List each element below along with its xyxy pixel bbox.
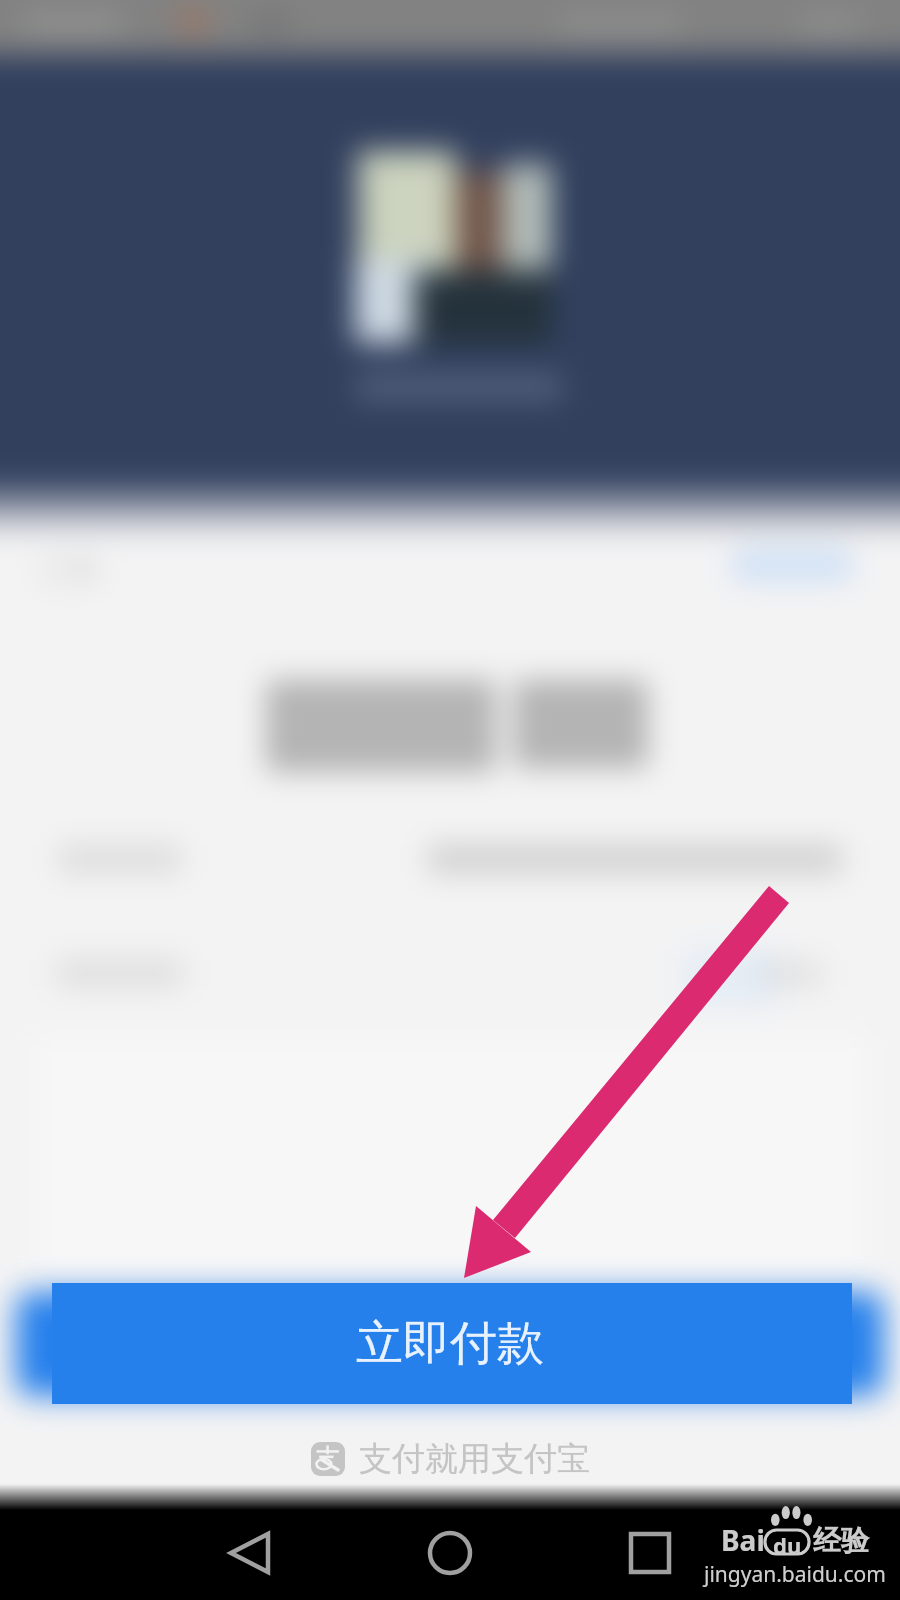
staticText: Bai [721, 1521, 765, 1559]
button[interactable]: Recent apps [600, 1510, 700, 1600]
staticText: jingyan.baidu.com [704, 1560, 886, 1589]
button[interactable] [52, 1283, 852, 1404]
button[interactable]: Home [400, 1510, 500, 1600]
staticText: 立即付款 [356, 1314, 544, 1373]
staticText: du [773, 1530, 802, 1554]
staticText: 经验 [813, 1523, 869, 1558]
staticText: 支付就用支付宝 [359, 1438, 590, 1480]
button[interactable]: Back [200, 1510, 300, 1600]
